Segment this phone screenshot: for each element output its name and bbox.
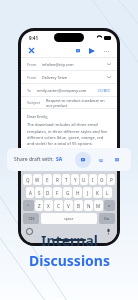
button[interactable]: U [80, 174, 88, 185]
staticText: Subject [27, 100, 41, 105]
staticText: B [77, 203, 80, 209]
staticText: 123 [28, 216, 35, 221]
button[interactable]: A [26, 187, 34, 198]
staticText: O [100, 177, 104, 183]
staticText: W [35, 177, 40, 183]
button[interactable]: J [83, 187, 92, 198]
button[interactable]: From [27, 58, 111, 70]
button[interactable]: F [53, 187, 62, 198]
staticText: U [82, 177, 86, 183]
staticText: Share draft with: [14, 156, 56, 163]
staticText: G [66, 190, 70, 196]
staticText: M [96, 203, 101, 209]
button[interactable]: R [53, 174, 61, 185]
staticText: S [38, 190, 41, 196]
button[interactable]: Y [71, 174, 79, 185]
staticText: Discussions [29, 251, 110, 270]
staticText: Go [104, 216, 110, 221]
staticText: Z [38, 203, 41, 209]
staticText: Request to conduct a webinar on our prod… [46, 98, 111, 108]
button[interactable]: space [41, 213, 97, 224]
button[interactable]: C [54, 200, 63, 211]
button[interactable]: L [103, 187, 112, 198]
button[interactable]: H [73, 187, 82, 198]
staticText: ^ [27, 203, 30, 208]
staticText: I [92, 177, 94, 183]
staticText: x [108, 203, 111, 208]
button[interactable]: B [74, 200, 83, 211]
staticText: H [76, 190, 80, 196]
staticText: T [65, 177, 68, 183]
staticText: space [64, 216, 74, 221]
staticText: J [87, 190, 89, 196]
button[interactable]: M [94, 200, 103, 211]
staticText: To [27, 88, 32, 93]
staticText: Y [74, 177, 77, 183]
staticText: From [27, 62, 37, 67]
staticText: A [29, 190, 32, 196]
button[interactable]: K [93, 187, 102, 198]
button[interactable]: Share draft with: [7, 148, 131, 171]
button[interactable]: From [27, 71, 111, 83]
button[interactable]: D [44, 187, 52, 198]
button[interactable]: Share screen [110, 153, 124, 167]
button[interactable]: Q [23, 174, 32, 185]
staticText: emily.carter@company.com [37, 88, 87, 93]
button[interactable]: x [104, 200, 115, 211]
button[interactable]: X [44, 200, 53, 211]
staticText: CC/BCC [98, 88, 111, 93]
staticText: K [96, 190, 99, 196]
button[interactable]: 123 [23, 213, 39, 224]
button[interactable]: Dictate [105, 228, 112, 235]
button[interactable]: Send [87, 46, 97, 56]
button[interactable]: Comment [75, 152, 91, 168]
staticText: Delivery Team [42, 75, 68, 80]
staticText: Internal [41, 231, 98, 250]
button[interactable]: Close [27, 46, 36, 55]
staticText: L [106, 190, 109, 196]
staticText: X [47, 203, 50, 209]
staticText: u [99, 156, 103, 164]
button[interactable]: T [62, 174, 70, 185]
button[interactable]: I [89, 174, 97, 185]
button[interactable]: Emoji [26, 228, 33, 235]
button[interactable]: S [35, 187, 43, 198]
staticText: 9:41 [29, 35, 38, 41]
staticText: SA [56, 156, 63, 163]
staticText: C [57, 203, 60, 209]
staticText: E [46, 177, 49, 183]
button[interactable]: Z [35, 200, 43, 211]
staticText: F [56, 190, 59, 196]
button[interactable]: W [33, 174, 42, 185]
staticText: V [67, 203, 70, 209]
button[interactable]: Go [99, 213, 115, 224]
button[interactable]: More options [101, 46, 111, 56]
staticText: infoline@city.com [42, 62, 74, 67]
button[interactable]: G [63, 187, 72, 198]
staticText: D [46, 190, 50, 196]
button[interactable]: ^ [23, 200, 34, 211]
button[interactable]: P [107, 174, 115, 185]
button[interactable]: Comment [72, 45, 83, 56]
button[interactable]: V [64, 200, 73, 211]
staticText: P [110, 177, 113, 183]
button[interactable]: Mention [95, 154, 107, 166]
button[interactable]: E [43, 174, 52, 185]
staticText: Dear Emily, [27, 114, 49, 119]
staticText: R [56, 177, 59, 183]
staticText: From [27, 75, 37, 80]
button[interactable]: To [27, 84, 111, 96]
staticText: Q [26, 177, 30, 183]
button[interactable]: N [84, 200, 93, 211]
staticText: The download includes all three email te… [27, 122, 111, 146]
staticText: N [87, 203, 91, 209]
button[interactable]: O [98, 174, 106, 185]
